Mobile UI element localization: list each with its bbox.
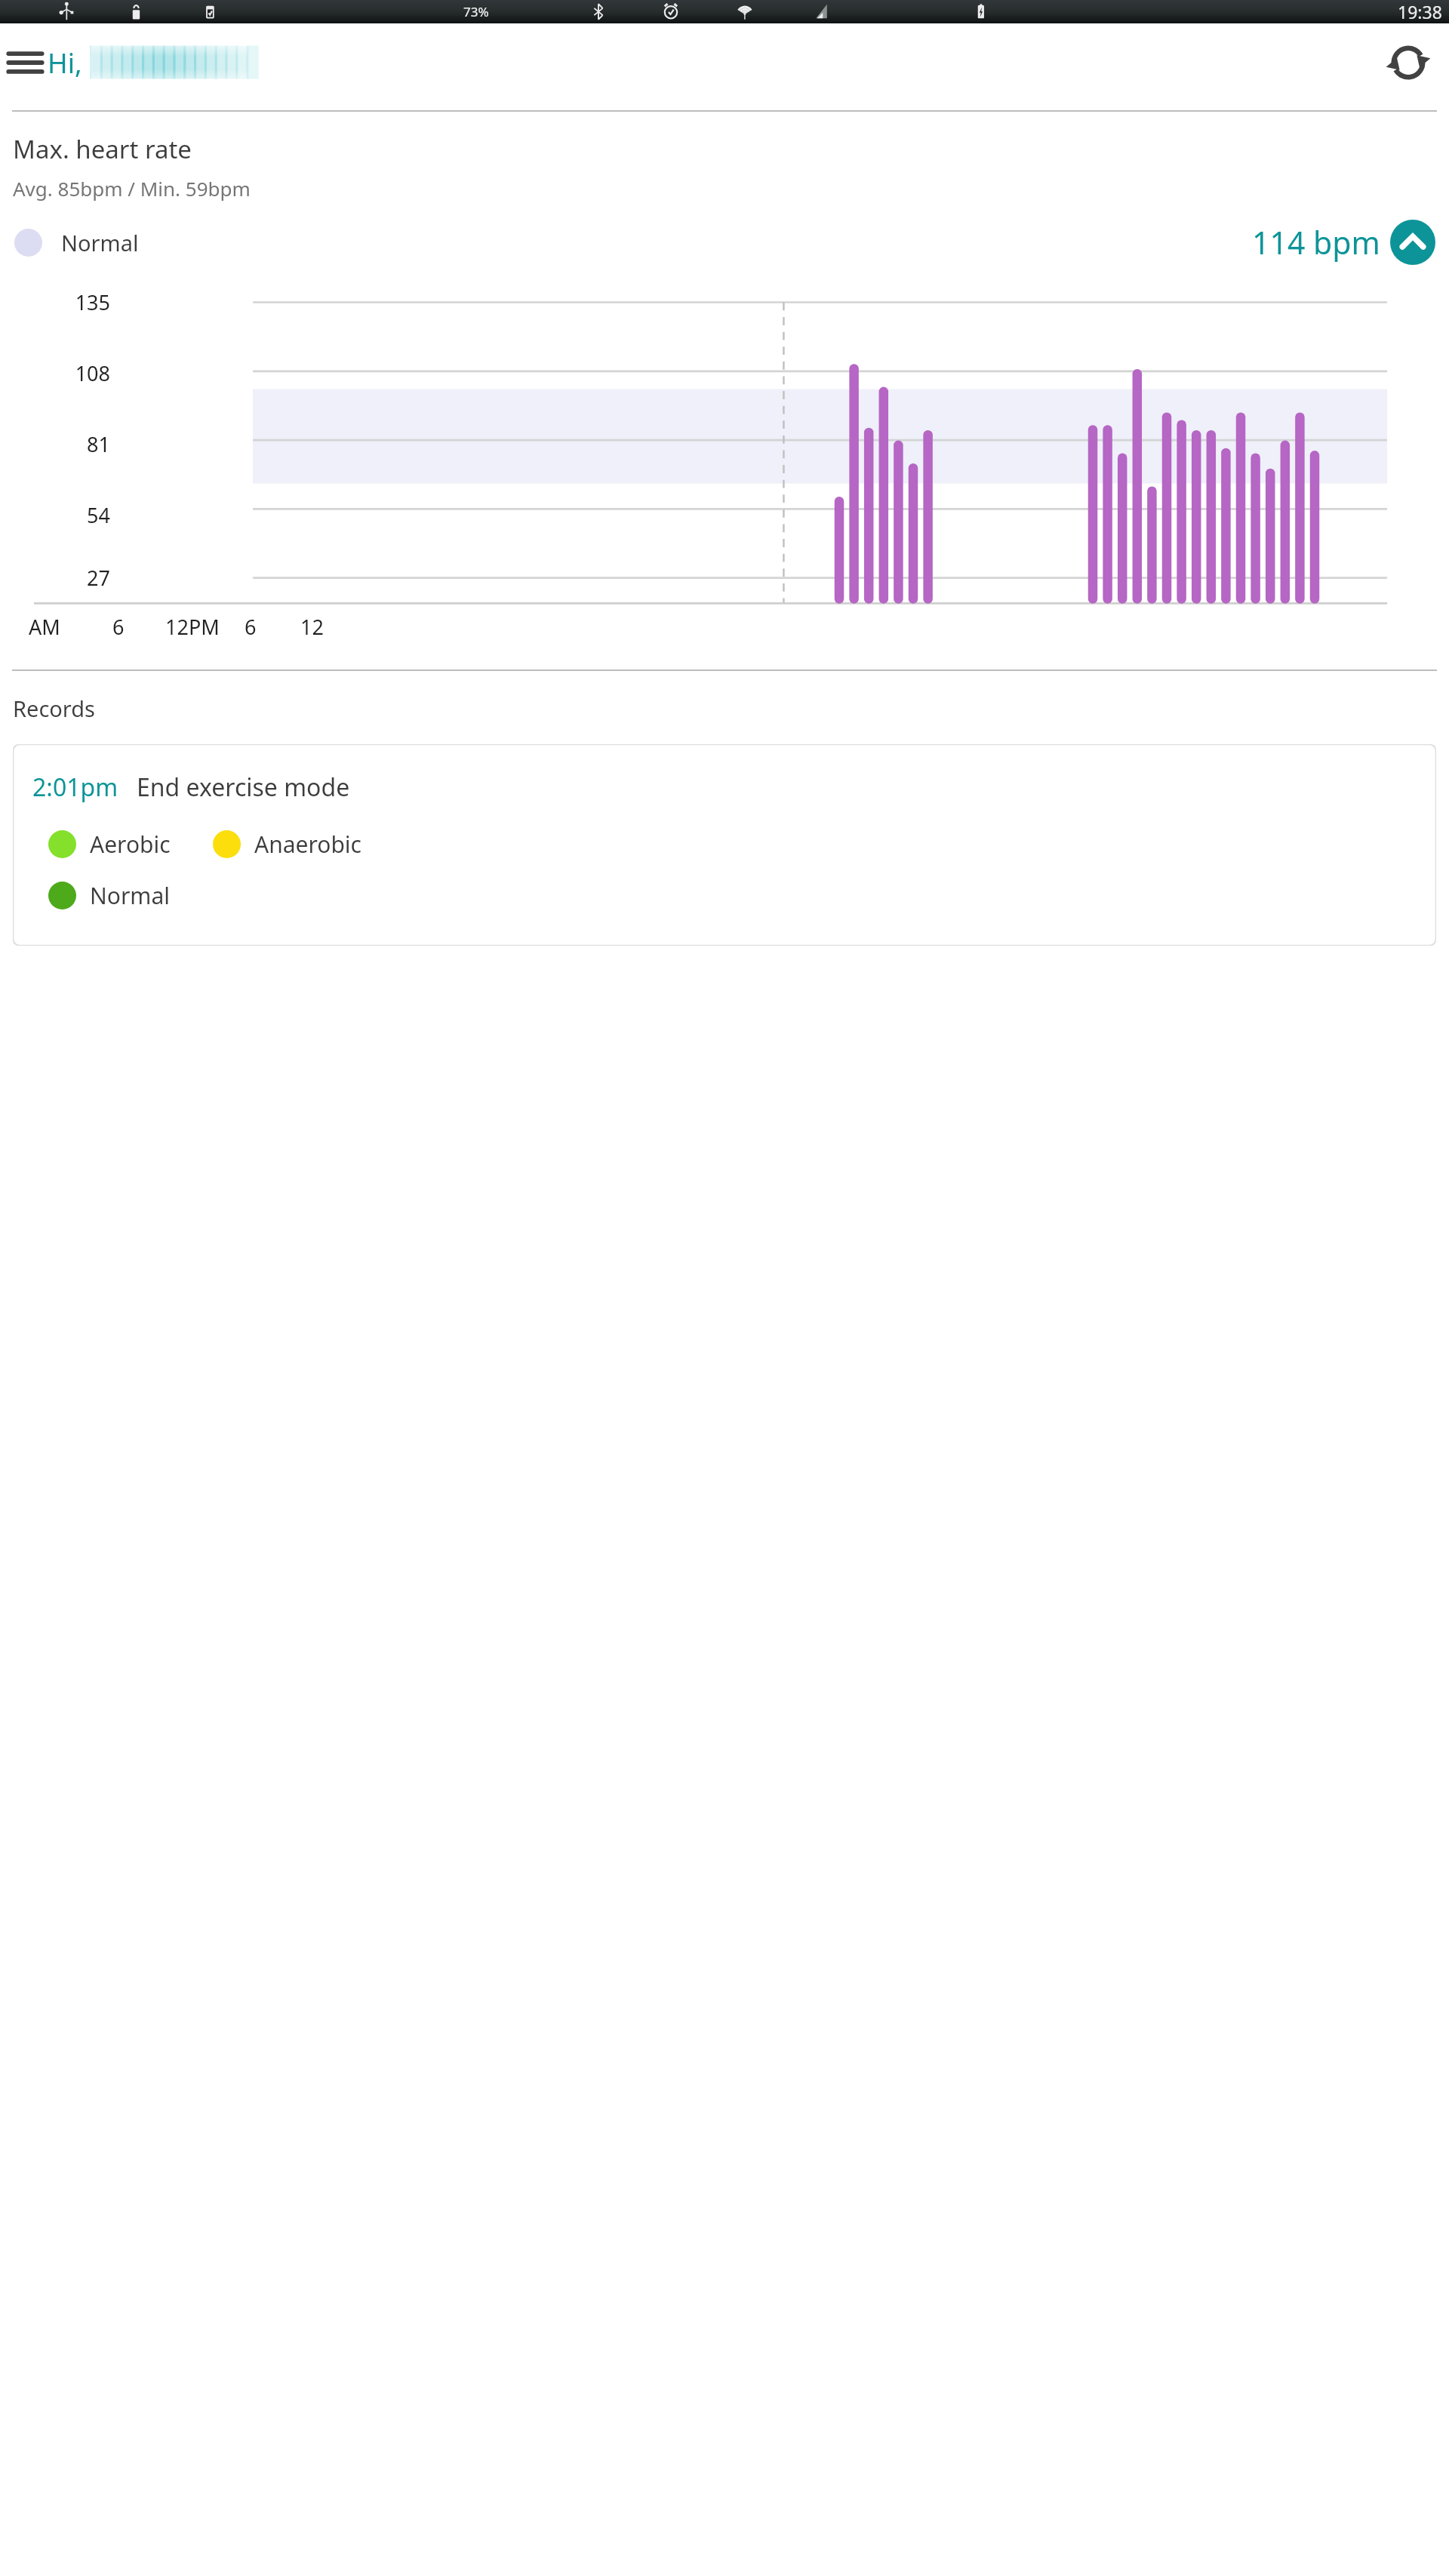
staticText: 114 bpm — [1252, 221, 1380, 263]
button[interactable]: 114 bpm — [1252, 220, 1435, 265]
staticText: 81 — [0, 430, 110, 458]
staticText: Hi, — [48, 45, 82, 82]
button[interactable]: Open navigation menu — [5, 42, 46, 83]
staticText: 6 — [245, 613, 257, 641]
staticText: 108 — [0, 359, 110, 387]
staticText: AM — [29, 613, 60, 641]
staticText: Aerobic — [90, 829, 171, 860]
staticText: 6 — [112, 613, 125, 641]
staticText: Normal — [90, 880, 170, 911]
staticText: Avg. 85bpm / Min. 59bpm — [13, 175, 251, 202]
staticText: 135 — [0, 288, 110, 316]
staticText: Anaerobic — [254, 829, 361, 860]
staticText: Max. heart rate — [13, 132, 192, 166]
staticText: 12PM — [165, 613, 220, 641]
staticText: Records — [13, 694, 95, 723]
staticText: 73% — [463, 3, 489, 20]
staticText: Normal — [61, 228, 139, 257]
staticText: End exercise mode — [137, 771, 350, 804]
button[interactable]: 2:01pm — [13, 744, 1436, 946]
staticText: 54 — [0, 501, 110, 529]
staticText: 12 — [300, 613, 324, 641]
staticText: 27 — [0, 564, 110, 592]
staticText: 19:38 — [1398, 0, 1442, 23]
button[interactable]: Refresh — [1385, 39, 1432, 86]
staticText: 2:01pm — [32, 771, 118, 804]
